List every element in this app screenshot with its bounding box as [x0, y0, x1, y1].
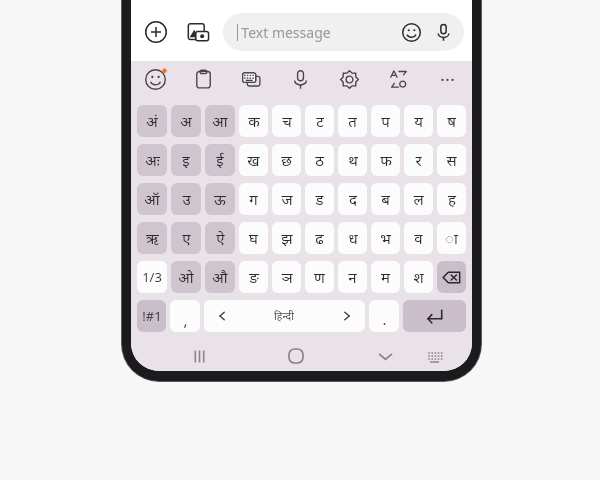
button[interactable]: म: [371, 261, 400, 293]
staticText: ऊ: [214, 189, 226, 209]
button[interactable]: Emoji: [131, 61, 179, 98]
button[interactable]: ओ: [171, 261, 201, 293]
button[interactable]: Recents: [183, 341, 215, 371]
button[interactable]: More: [423, 61, 472, 98]
button[interactable]: .: [369, 300, 399, 332]
button[interactable]: ा: [437, 222, 466, 254]
button[interactable]: प: [371, 105, 400, 137]
button[interactable]: ए: [171, 222, 201, 254]
button[interactable]: ई: [205, 144, 235, 176]
button[interactable]: Switch keyboard: [418, 341, 450, 371]
button[interactable]: ऑ: [137, 183, 167, 215]
staticText: !#1: [142, 307, 162, 325]
staticText: भ: [380, 228, 391, 248]
button[interactable]: Text message: [223, 13, 464, 51]
staticText: ऑ: [144, 189, 160, 209]
button[interactable]: स: [437, 144, 466, 176]
staticText: ह: [448, 189, 456, 209]
staticText: औ: [212, 267, 228, 287]
staticText: च: [282, 111, 292, 131]
button[interactable]: क: [239, 105, 268, 137]
button[interactable]: अं: [137, 105, 167, 137]
button[interactable]: ऋ: [137, 222, 167, 254]
button[interactable]: Settings: [325, 61, 374, 98]
button[interactable]: औ: [205, 261, 235, 293]
button[interactable]: Voice: [276, 61, 325, 98]
button[interactable]: !#1: [137, 300, 166, 332]
button[interactable]: Clipboard: [179, 61, 227, 98]
button[interactable]: र: [404, 144, 433, 176]
button[interactable]: 1/3: [137, 261, 167, 293]
staticText: ज: [281, 189, 293, 209]
button[interactable]: ध: [338, 222, 367, 254]
button[interactable]: न: [338, 261, 367, 293]
staticText: ठ: [315, 150, 324, 170]
staticText: ओ: [178, 267, 194, 287]
staticText: ल: [413, 189, 424, 209]
button[interactable]: ब: [371, 183, 400, 215]
button[interactable]: च: [272, 105, 301, 137]
button[interactable]: Hide keyboard: [369, 341, 401, 371]
button[interactable]: अः: [137, 144, 167, 176]
button[interactable]: इ: [171, 144, 201, 176]
button[interactable]: Keyboard modes: [227, 61, 276, 98]
staticText: ड: [315, 189, 324, 209]
button[interactable]: Voice input: [428, 17, 458, 47]
button[interactable]: Enter: [403, 300, 466, 332]
button[interactable]: Translate: [374, 61, 423, 98]
button[interactable]: ङ: [239, 261, 268, 293]
button[interactable]: Emoji: [396, 17, 426, 47]
button[interactable]: ग: [239, 183, 268, 215]
button[interactable]: Gallery: [181, 15, 215, 49]
button[interactable]: घ: [239, 222, 268, 254]
button[interactable]: श: [404, 261, 433, 293]
staticText: ऐ: [216, 228, 225, 248]
button[interactable]: ड: [305, 183, 334, 215]
button[interactable]: ण: [305, 261, 334, 293]
button[interactable]: ठ: [305, 144, 334, 176]
staticText: श: [413, 267, 424, 287]
button[interactable]: ल: [404, 183, 433, 215]
button[interactable]: फ: [371, 144, 400, 176]
button[interactable]: ऐ: [205, 222, 235, 254]
button[interactable]: हिन्दी: [204, 300, 365, 332]
staticText: ट: [316, 111, 324, 131]
staticText: छ: [281, 150, 292, 170]
button[interactable]: ढ: [305, 222, 334, 254]
staticText: आ: [212, 111, 228, 131]
button[interactable]: Backspace: [437, 261, 466, 293]
button[interactable]: य: [404, 105, 433, 137]
button[interactable]: ञ: [272, 261, 301, 293]
staticText: झ: [281, 228, 293, 248]
button[interactable]: ख: [239, 144, 268, 176]
staticText: .: [382, 309, 387, 329]
staticText: ष: [447, 111, 456, 131]
staticText: म: [381, 267, 390, 287]
staticText: फ: [380, 150, 392, 170]
button[interactable]: ,: [170, 300, 200, 332]
button[interactable]: ट: [305, 105, 334, 137]
staticText: उ: [182, 189, 191, 209]
button[interactable]: छ: [272, 144, 301, 176]
button[interactable]: ज: [272, 183, 301, 215]
button[interactable]: थ: [338, 144, 367, 176]
staticText: इ: [182, 150, 190, 170]
button[interactable]: द: [338, 183, 367, 215]
staticText: ए: [182, 228, 191, 248]
button[interactable]: ष: [437, 105, 466, 137]
button[interactable]: अ: [171, 105, 201, 137]
button[interactable]: उ: [171, 183, 201, 215]
staticText: क: [248, 111, 260, 131]
button[interactable]: व: [404, 222, 433, 254]
staticText: व: [414, 228, 423, 248]
button[interactable]: भ: [371, 222, 400, 254]
button[interactable]: आ: [205, 105, 235, 137]
button[interactable]: झ: [272, 222, 301, 254]
staticText: ख: [247, 150, 260, 170]
button[interactable]: Add attachment: [139, 15, 173, 49]
button[interactable]: ऊ: [205, 183, 235, 215]
button[interactable]: ह: [437, 183, 466, 215]
staticText: 1/3: [142, 268, 162, 286]
button[interactable]: त: [338, 105, 367, 137]
button[interactable]: Home: [280, 341, 312, 371]
